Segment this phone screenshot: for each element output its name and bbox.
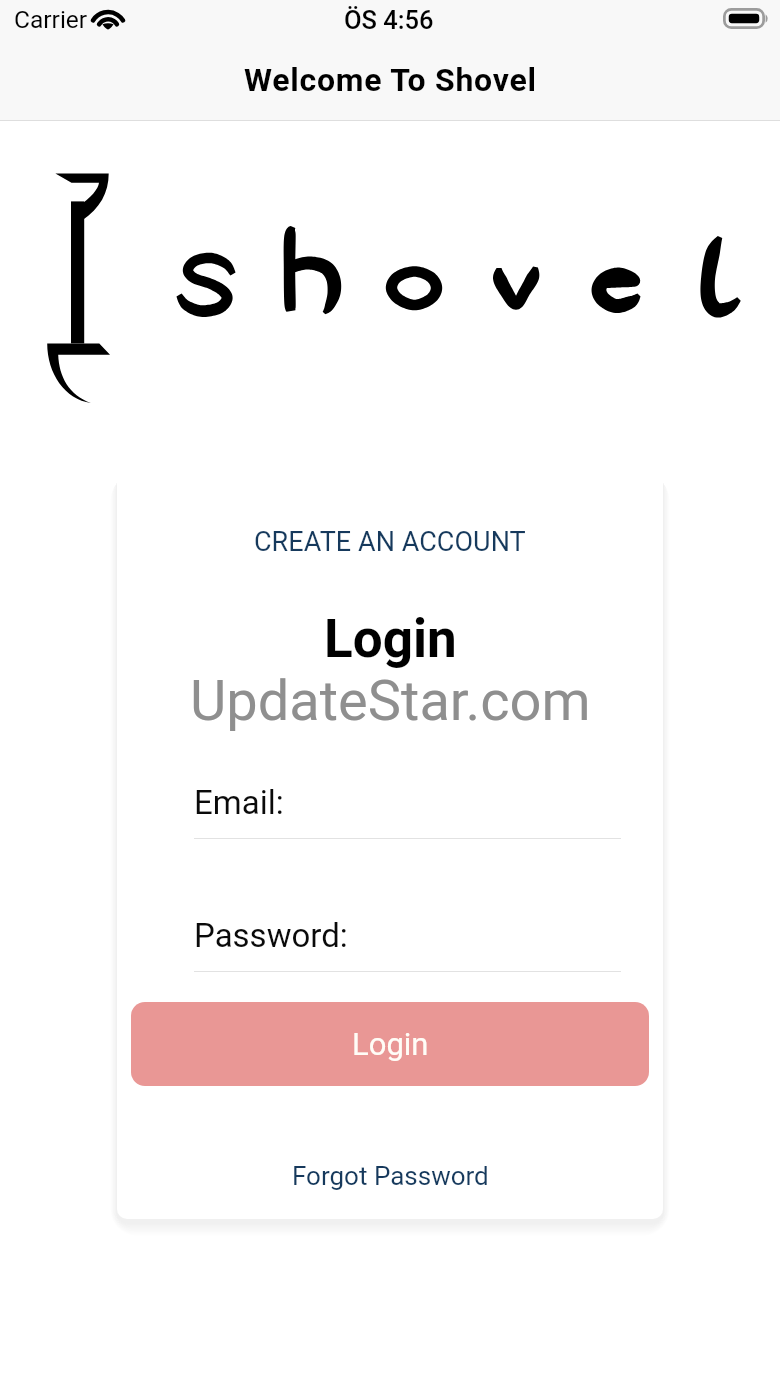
- other: Wi-Fi signal: [93, 8, 123, 29]
- staticText: Login: [352, 1026, 429, 1062]
- staticText: Email:: [194, 783, 284, 822]
- staticText: Password:: [194, 916, 348, 955]
- staticText: Login: [324, 608, 457, 670]
- button[interactable]: Password:: [194, 916, 621, 972]
- button[interactable]: CREATE AN ACCOUNT: [242, 520, 538, 564]
- button[interactable]: Forgot Password: [280, 1155, 501, 1197]
- other: Battery full: [723, 8, 770, 29]
- staticText: CREATE AN ACCOUNT: [254, 526, 526, 558]
- staticText: Carrier: [14, 5, 88, 34]
- button[interactable]: Login: [131, 1002, 649, 1086]
- staticText: Forgot Password: [292, 1161, 489, 1191]
- staticText: UpdateStar.com: [190, 668, 591, 734]
- staticText: ÖS 4:56: [344, 5, 434, 35]
- button[interactable]: Email:: [194, 783, 621, 839]
- staticText: Welcome To Shovel: [244, 61, 537, 99]
